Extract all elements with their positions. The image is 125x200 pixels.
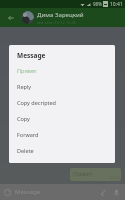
button[interactable]: Attach file	[100, 189, 107, 196]
staticText: 98%	[93, 1, 102, 7]
button[interactable]: Reply	[9, 78, 115, 94]
button[interactable]: Copy	[9, 110, 115, 126]
button[interactable]: Привет	[9, 62, 115, 78]
button[interactable]: Back	[0, 15, 21, 21]
staticText: Forward	[17, 131, 39, 138]
button[interactable]: Voice message	[113, 189, 120, 196]
staticText: 10:41	[110, 1, 123, 8]
staticText: Привет	[17, 67, 37, 74]
staticText: Copy	[17, 115, 30, 122]
staticText: Message	[15, 188, 41, 196]
button[interactable]: Copy decripted	[9, 94, 115, 110]
staticText: Дима Зарецкий	[37, 11, 84, 19]
staticText: Reply	[17, 83, 32, 90]
staticText: Привет)	[73, 171, 93, 178]
button[interactable]: Delete	[9, 142, 115, 158]
button[interactable]: Emoji	[4, 189, 11, 196]
staticText: Copy decripted	[17, 99, 56, 106]
button[interactable]: Forward	[9, 126, 115, 142]
staticText: last seen 10:12 13:45	[37, 20, 77, 25]
staticText: Delete	[17, 147, 34, 154]
staticText: Message	[17, 51, 46, 60]
